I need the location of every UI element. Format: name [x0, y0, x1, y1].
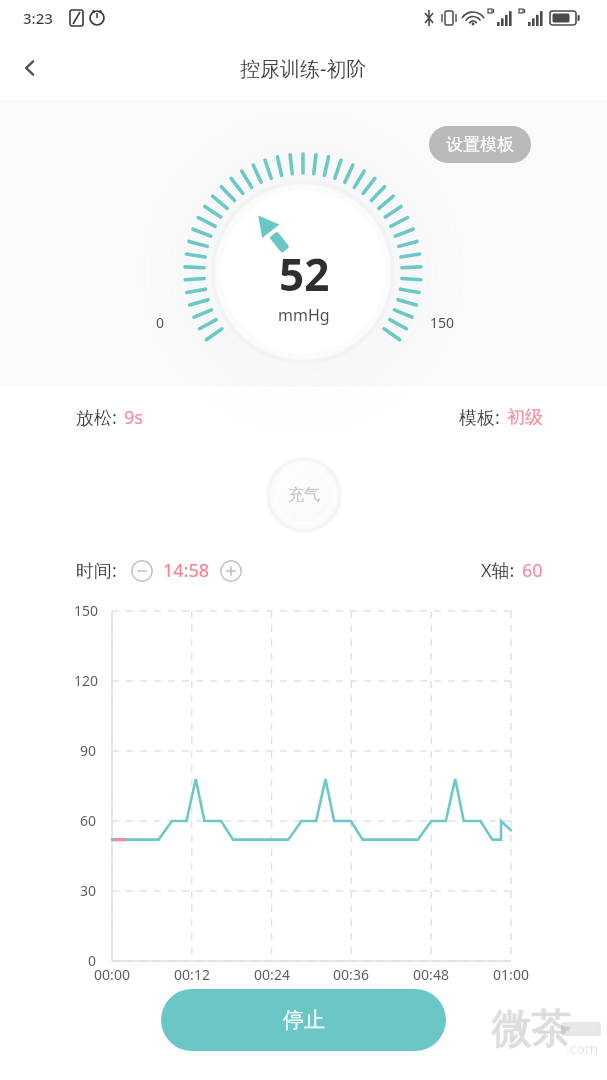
- staticText: 设置模板: [446, 134, 514, 155]
- button[interactable]: Decrease time: [131, 560, 153, 582]
- button[interactable]: Increase time: [220, 560, 242, 582]
- staticText: 停止: [283, 1007, 325, 1033]
- staticText: 00:12: [162, 965, 222, 984]
- staticText: 模板:: [459, 405, 500, 430]
- staticText: 0: [88, 951, 97, 970]
- staticText: 60: [80, 811, 97, 830]
- staticText: 01:00: [481, 965, 541, 984]
- staticText: 120: [74, 671, 99, 690]
- staticText: X轴:: [481, 558, 515, 583]
- staticText: 30: [80, 881, 97, 900]
- staticText: 00:48: [401, 965, 461, 984]
- button[interactable]: 停止: [161, 989, 446, 1051]
- staticText: 00:00: [82, 965, 142, 984]
- staticText: mmHg: [278, 304, 330, 326]
- staticText: 00:36: [321, 965, 381, 984]
- staticText: 3:23: [23, 8, 53, 28]
- staticText: 放松:: [76, 405, 117, 430]
- staticText: WXCHA: [565, 1023, 597, 1035]
- staticText: 9s: [124, 405, 143, 430]
- staticText: 初级: [507, 406, 543, 429]
- button[interactable]: 充气: [266, 457, 342, 533]
- staticText: 14:58: [163, 558, 210, 583]
- staticText: 150: [430, 313, 455, 332]
- button[interactable]: 设置模板: [429, 126, 531, 163]
- staticText: 90: [80, 741, 97, 760]
- staticText: 00:24: [242, 965, 302, 984]
- staticText: 时间:: [76, 558, 117, 583]
- staticText: 150: [74, 601, 99, 620]
- staticText: 52: [279, 244, 330, 304]
- staticText: 0: [156, 313, 165, 332]
- staticText: 充气: [288, 485, 320, 505]
- staticText: 微茶: [491, 1004, 571, 1054]
- staticText: 60: [522, 558, 543, 583]
- staticText: .com: [566, 1039, 599, 1058]
- button[interactable]: Back: [6, 44, 54, 92]
- staticText: 控尿训练-初阶: [240, 55, 367, 82]
